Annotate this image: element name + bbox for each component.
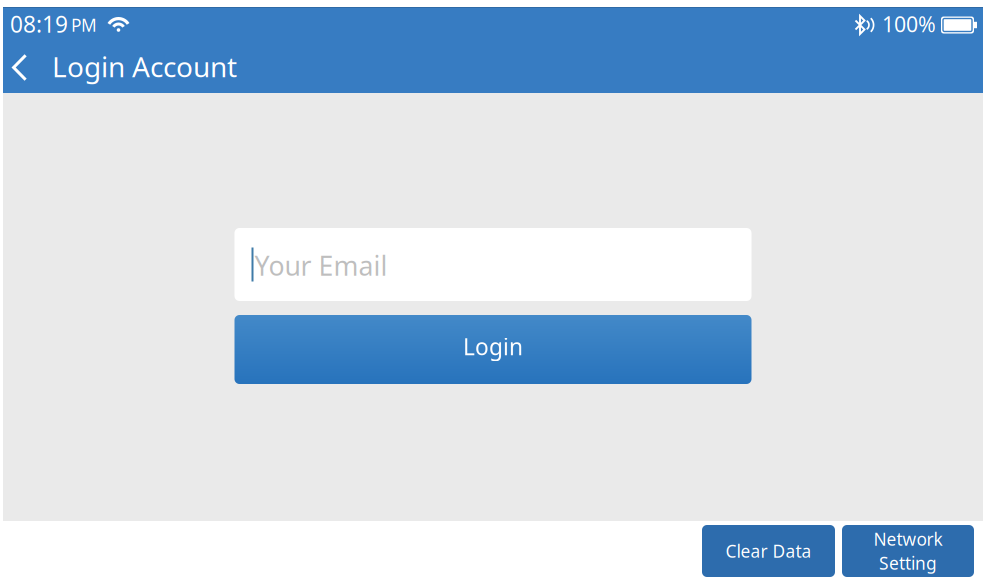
staticText: 08:19 — [10, 9, 68, 39]
staticText: Login Account — [52, 48, 237, 85]
button[interactable]: Login — [234, 315, 751, 384]
staticText: PM — [71, 13, 97, 36]
staticText: Your Email — [254, 248, 387, 283]
staticText: Clear Data — [725, 539, 811, 562]
button[interactable]: Clear Data — [702, 525, 835, 577]
button[interactable]: Back — [3, 44, 51, 93]
button[interactable]: Network — [842, 525, 974, 577]
staticText: Login — [463, 331, 523, 361]
button[interactable]: Your Email — [234, 228, 751, 301]
staticText: Network — [873, 527, 942, 550]
staticText: Setting — [879, 551, 937, 574]
staticText: 100% — [882, 10, 936, 38]
